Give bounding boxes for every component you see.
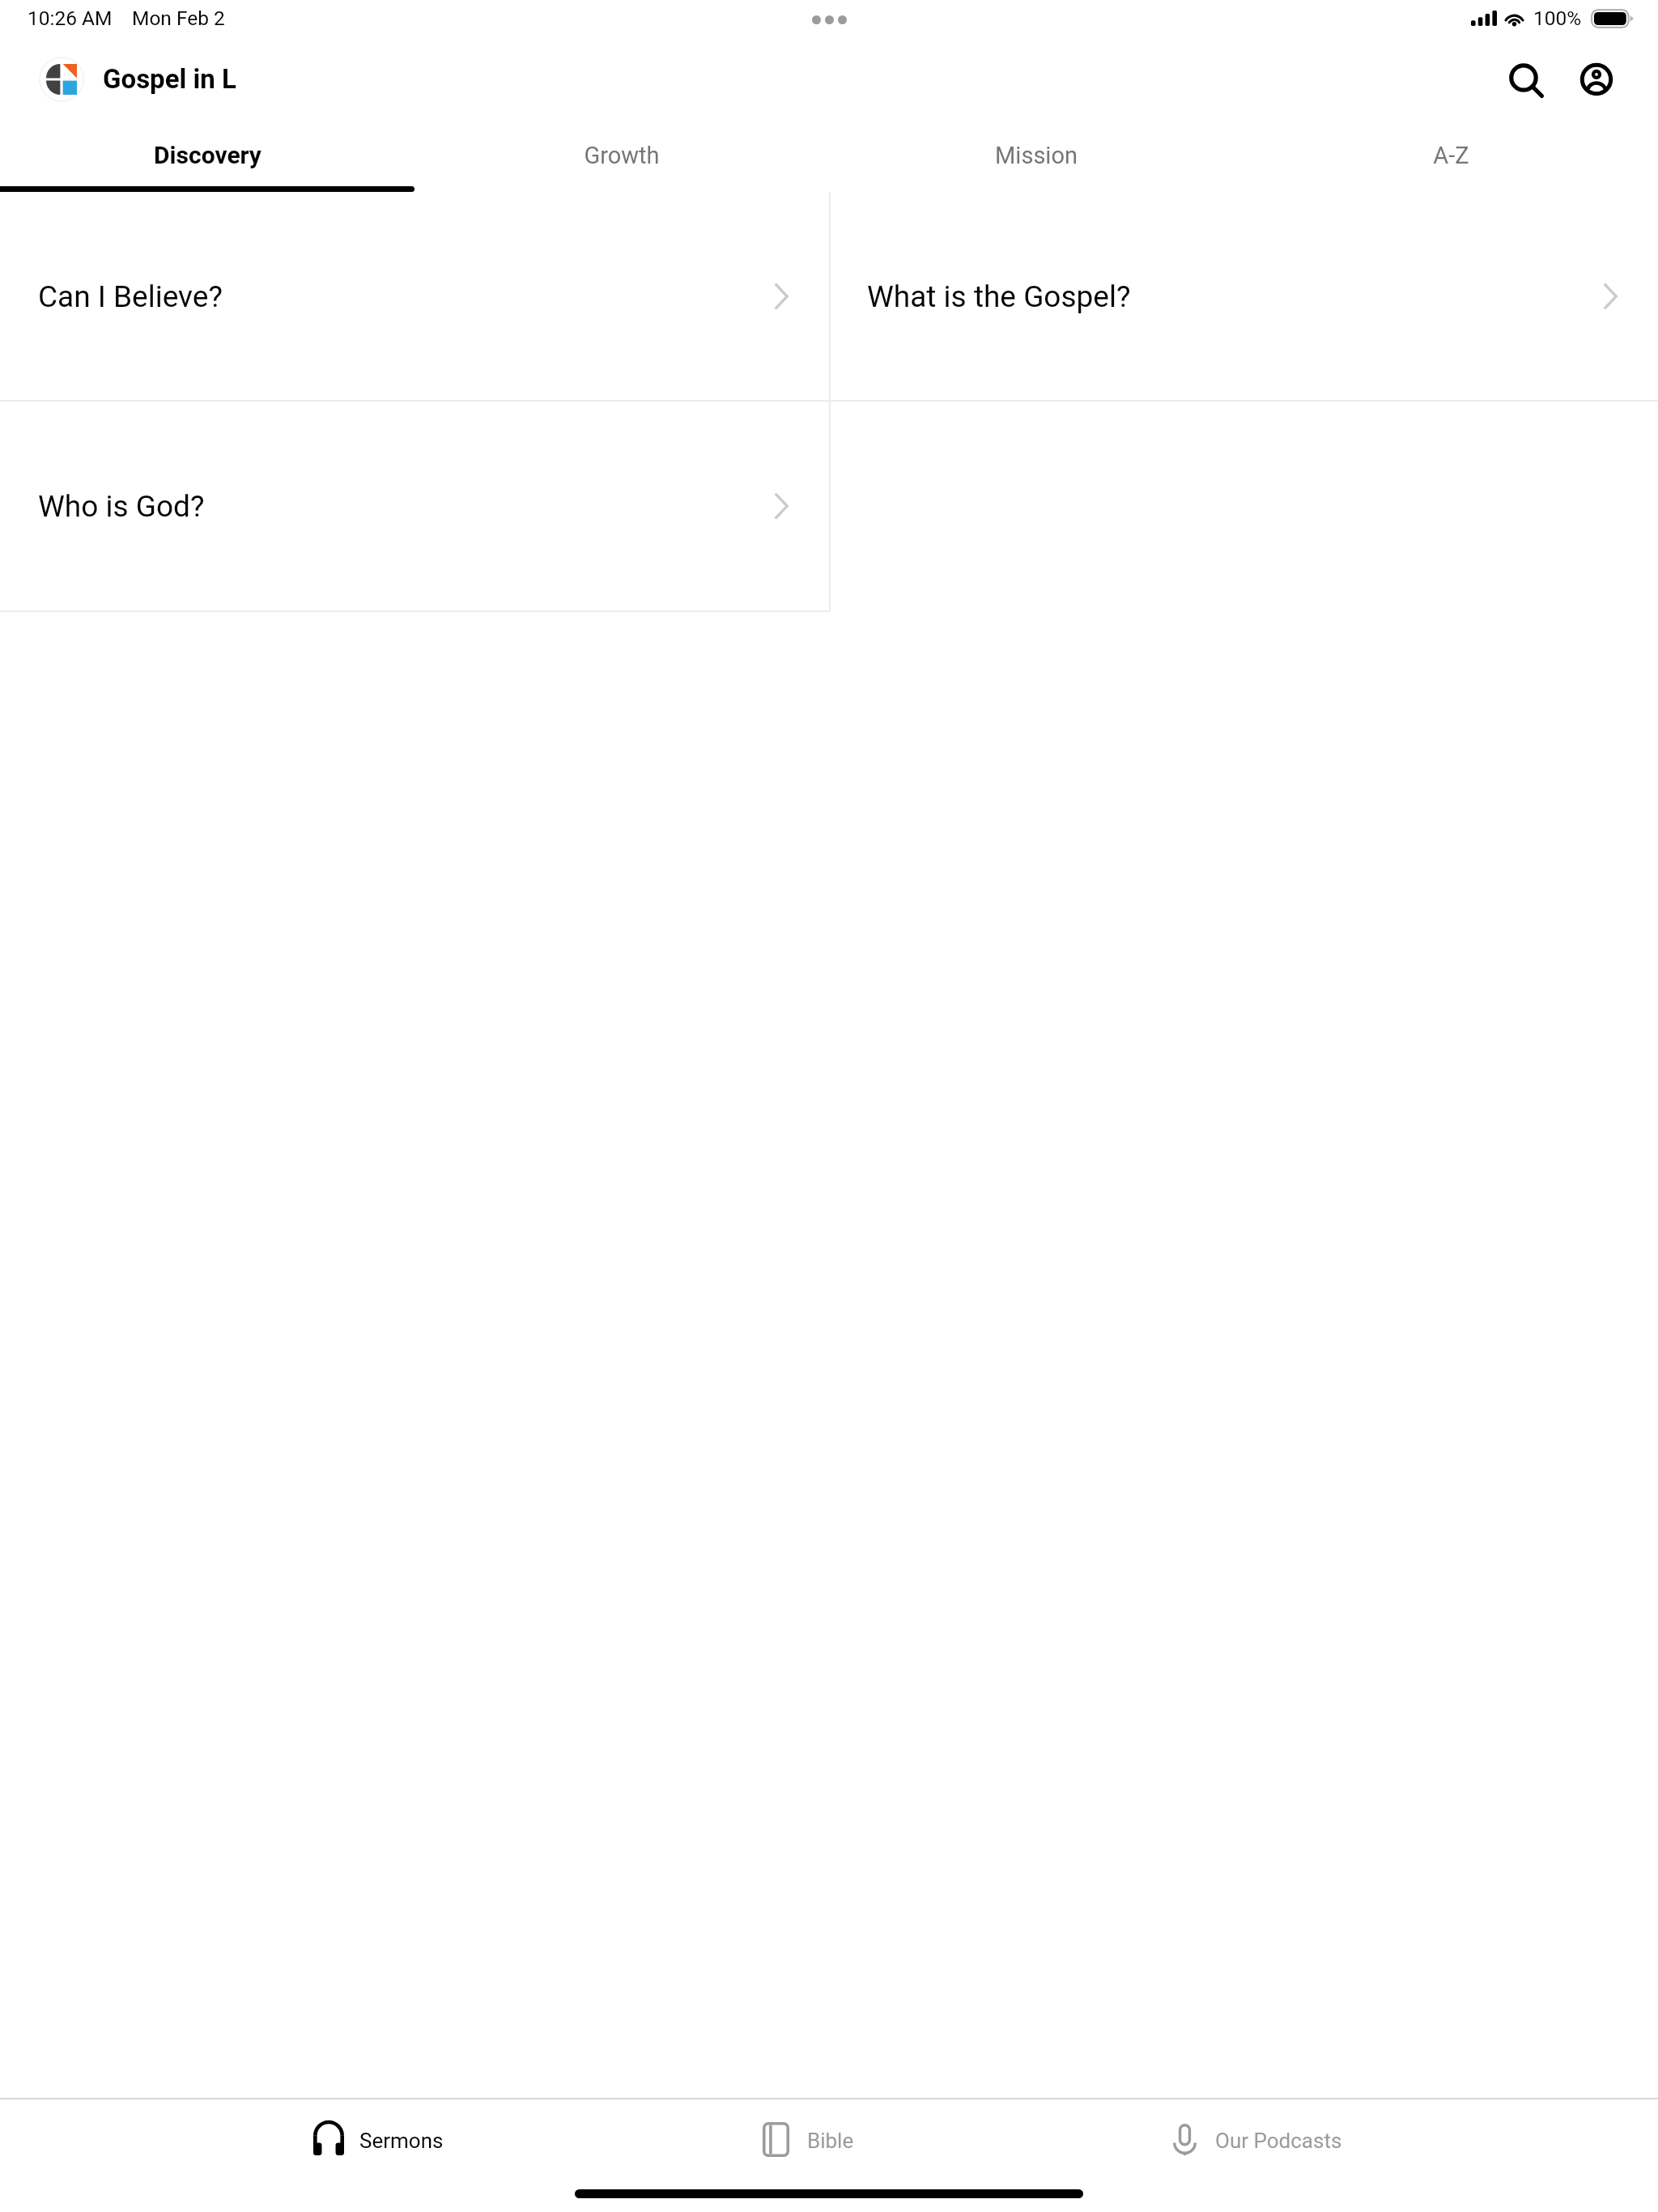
button[interactable]: Who is God? bbox=[0, 400, 829, 611]
staticText: Growth bbox=[584, 142, 660, 169]
staticText: Mission bbox=[995, 142, 1078, 169]
button[interactable]: Bible bbox=[763, 2122, 854, 2171]
button[interactable]: Account bbox=[1564, 47, 1629, 112]
staticText: Gospel in L bbox=[103, 63, 236, 95]
button[interactable]: Our Podcasts bbox=[1173, 2122, 1342, 2171]
button[interactable]: Discovery bbox=[0, 117, 414, 192]
staticText: Who is God? bbox=[38, 489, 205, 524]
staticText: What is the Gospel? bbox=[867, 279, 1131, 314]
button[interactable]: What is the Gospel? bbox=[829, 192, 1658, 400]
button[interactable]: Growth bbox=[414, 117, 829, 192]
staticText: 100% bbox=[1533, 6, 1582, 30]
staticText: Sermons bbox=[359, 2129, 444, 2153]
staticText: Can I Believe? bbox=[38, 279, 223, 314]
staticText: A-Z bbox=[1433, 142, 1469, 169]
button[interactable]: Can I Believe? bbox=[0, 192, 829, 400]
staticText: Bible bbox=[807, 2129, 854, 2153]
button[interactable]: Mission bbox=[829, 117, 1243, 192]
button[interactable]: Search bbox=[1494, 49, 1559, 113]
staticText: Mon Feb 2 bbox=[132, 6, 225, 30]
button[interactable]: Sermons bbox=[313, 2122, 444, 2171]
button[interactable]: A-Z bbox=[1243, 117, 1658, 192]
staticText: 10:26 AM bbox=[28, 6, 113, 30]
staticText: Our Podcasts bbox=[1215, 2129, 1342, 2153]
staticText: Discovery bbox=[154, 141, 261, 169]
